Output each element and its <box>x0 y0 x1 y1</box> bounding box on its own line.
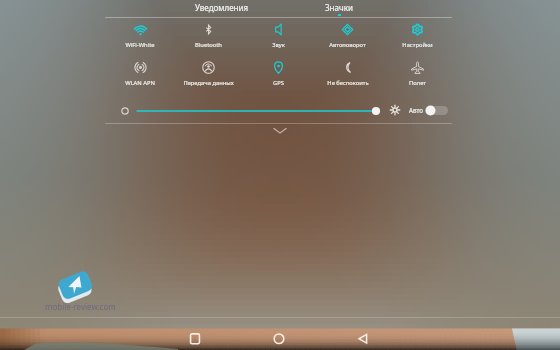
button[interactable]: Уведомления <box>166 0 277 17</box>
button[interactable]: Brightness <box>134 104 388 118</box>
staticText: GPS <box>273 79 284 87</box>
button[interactable]: Настройки <box>383 19 452 56</box>
staticText: Настройки <box>402 41 433 49</box>
button[interactable]: Звук <box>244 19 313 56</box>
staticText: WLAN APN <box>125 79 155 87</box>
button[interactable]: Значки <box>290 0 388 17</box>
button[interactable]: GPS <box>244 57 313 94</box>
staticText: WiFi-White <box>125 41 155 49</box>
button[interactable]: Home <box>273 333 285 345</box>
staticText: Не беспокоить <box>327 79 369 87</box>
staticText: Звук <box>272 41 285 49</box>
button[interactable]: WiFi-White <box>105 19 174 56</box>
staticText: Авто <box>409 106 423 114</box>
button[interactable]: Автоповорот <box>313 19 382 56</box>
button[interactable]: Back <box>357 333 369 345</box>
staticText: Bluetooth <box>195 41 222 49</box>
button[interactable]: Auto brightness <box>425 106 448 115</box>
button[interactable]: WLAN APN <box>105 57 174 94</box>
staticText: Автоповорот <box>329 41 366 49</box>
staticText: Полет <box>409 79 426 87</box>
button[interactable]: Bluetooth <box>174 19 243 56</box>
button[interactable]: Recents <box>189 333 201 345</box>
button[interactable]: Collapse panel <box>271 126 289 135</box>
staticText: Передача данных <box>183 79 234 87</box>
button[interactable]: Передача данных <box>174 57 243 94</box>
staticText: Уведомления <box>195 2 249 13</box>
button[interactable]: Не беспокоить <box>313 57 382 94</box>
button[interactable]: Полет <box>383 57 452 94</box>
staticText: Значки <box>325 2 353 13</box>
staticText: mobile-review.com <box>45 301 116 312</box>
